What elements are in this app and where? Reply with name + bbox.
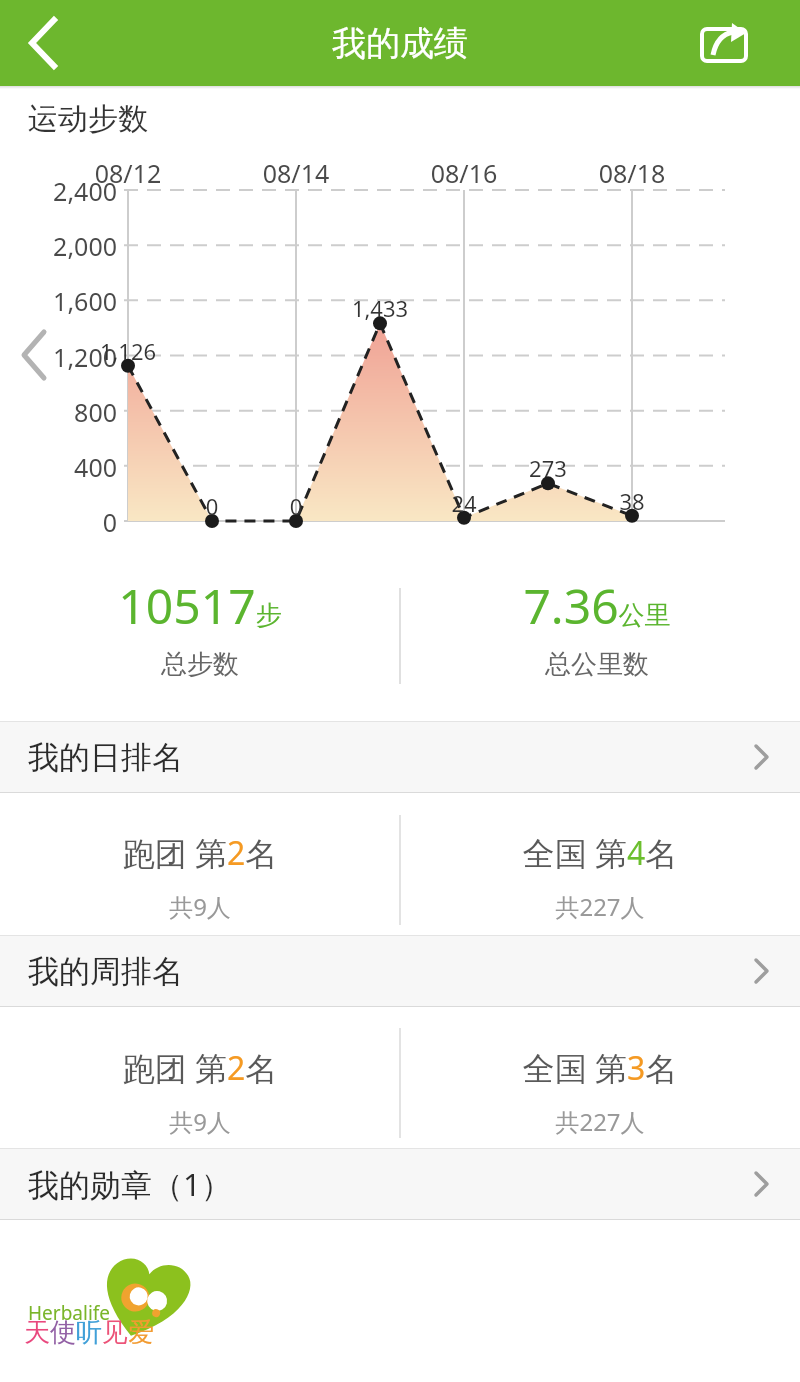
staticText: 总步数 xyxy=(100,648,300,681)
staticText: 我的周排名 xyxy=(28,952,183,991)
staticText: 1,600 xyxy=(17,284,117,318)
staticText: 天 xyxy=(24,1316,50,1349)
staticText: 运动步数 xyxy=(28,100,148,138)
staticText: 800 xyxy=(17,395,117,429)
staticText: 听 xyxy=(76,1316,102,1349)
button[interactable]: 我的日排名 xyxy=(0,721,800,793)
staticText: 共227人 xyxy=(500,1105,700,1138)
staticText: 跑团 第2名 xyxy=(50,831,350,875)
staticText: 0 xyxy=(236,491,356,521)
button[interactable] xyxy=(700,17,752,69)
staticText: 08/18 xyxy=(572,156,692,190)
staticText: 2,400 xyxy=(17,174,117,208)
staticText: 08/14 xyxy=(236,156,356,190)
staticText: 400 xyxy=(17,450,117,484)
staticText: 跑团 第2名 xyxy=(50,1046,350,1090)
staticText: 273 xyxy=(488,453,608,483)
button[interactable] xyxy=(0,11,64,75)
staticText: 共227人 xyxy=(500,890,700,923)
staticText: 我的勋章（1） xyxy=(28,1163,232,1205)
staticText: 使 xyxy=(50,1316,76,1349)
staticText: 全国 第4名 xyxy=(450,831,750,875)
staticText: 0 xyxy=(17,505,117,539)
staticText: 24 xyxy=(404,488,524,518)
staticText: 我的成绩 xyxy=(0,22,800,65)
staticText: 1,433 xyxy=(320,293,440,323)
staticText: Herbalife xyxy=(28,1300,111,1326)
staticText: 10517步 xyxy=(50,573,350,638)
staticText: 08/12 xyxy=(68,156,188,190)
staticText: 共9人 xyxy=(100,890,300,923)
button[interactable]: 我的周排名 xyxy=(0,935,800,1007)
staticText: 0 xyxy=(152,491,272,521)
staticText: 见 xyxy=(102,1316,128,1349)
staticText: 全国 第3名 xyxy=(450,1046,750,1090)
staticText: 08/16 xyxy=(404,156,524,190)
staticText: 我的日排名 xyxy=(28,738,183,777)
staticText: 7.36公里 xyxy=(447,573,747,638)
staticText: 总公里数 xyxy=(497,648,697,681)
staticText: 1,200 xyxy=(17,340,117,374)
button[interactable]: 我的勋章（1） xyxy=(0,1148,800,1220)
staticText: 爱 xyxy=(128,1316,154,1349)
staticText: 2,000 xyxy=(17,229,117,263)
staticText: 共9人 xyxy=(100,1105,300,1138)
staticText: 38 xyxy=(572,486,692,516)
staticText: 1,126 xyxy=(68,336,188,366)
